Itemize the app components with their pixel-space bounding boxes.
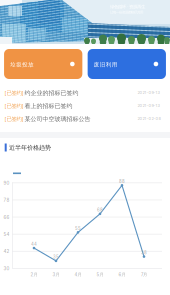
staticText: 垃圾投放 (10, 61, 34, 68)
staticText: 2021-09-13 (137, 103, 159, 108)
button[interactable]: 废旧利用 (88, 49, 166, 79)
staticText: 54 (3, 232, 9, 237)
staticText: 30 (3, 266, 9, 271)
staticText: 近半年价格趋势 (9, 144, 51, 151)
button[interactable]: [已签约] (0, 99, 170, 112)
staticText: 4月 (74, 272, 81, 277)
staticText: 44 (31, 242, 37, 247)
staticText: 绿色循环 · 资源再生 (110, 4, 145, 9)
staticText: 38 (141, 250, 147, 255)
staticText: 6月 (118, 272, 125, 277)
staticText: 2021-02-08 (137, 116, 160, 121)
button[interactable]: [已签约] (0, 112, 170, 125)
staticText: [已签约] (5, 90, 24, 96)
button[interactable]: 垃圾投放 (4, 49, 82, 79)
staticText: 2月 (30, 272, 37, 277)
staticText: 废旧利用 (94, 61, 118, 68)
button[interactable]: [已签约] (0, 86, 170, 99)
staticText: 看上的招标已签约 (24, 102, 72, 110)
staticText: 35 (53, 254, 59, 260)
staticText: 55 (75, 226, 81, 231)
staticText: 某公司中空玻璃招标公告 (24, 115, 90, 123)
staticText: 3月 (52, 272, 59, 277)
staticText: 68 (97, 207, 103, 212)
staticText: 88 (119, 179, 125, 184)
staticText: 约企业的招标已签约 (24, 89, 78, 97)
staticText: [已签约] (5, 116, 24, 122)
staticText: 66 (3, 214, 9, 220)
staticText: 90 (3, 180, 9, 186)
staticText: 42 (3, 249, 9, 254)
staticText: 让每一份资源都物尽其用 (110, 10, 143, 14)
staticText: [已签约] (5, 103, 24, 109)
staticText: 2021-09-13 (137, 90, 159, 95)
staticText: 78 (3, 197, 9, 203)
staticText: 5月 (96, 272, 103, 277)
staticText: 7月 (141, 272, 147, 277)
